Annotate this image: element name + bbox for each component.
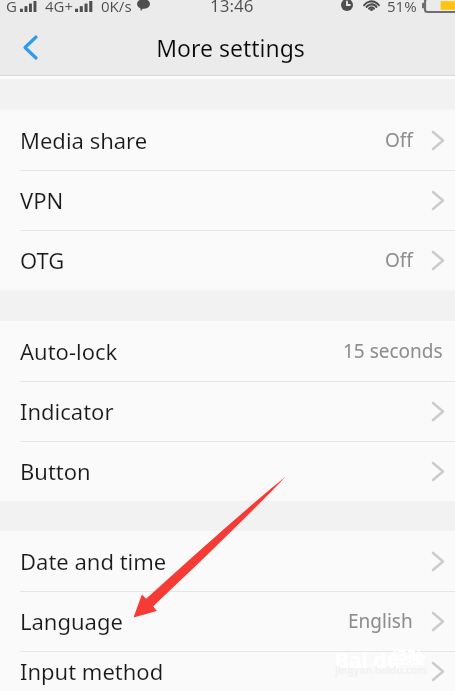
button[interactable]: Indicator (0, 381, 455, 441)
button[interactable]: VPN (0, 170, 455, 230)
staticText: jingyan.baidu.com (335, 663, 427, 677)
staticText: Off (385, 247, 413, 273)
button[interactable]: Button (0, 441, 455, 501)
button[interactable]: Date and time (0, 531, 455, 591)
staticText: Button (20, 456, 91, 486)
staticText: G (6, 0, 17, 16)
staticText: Bai du (335, 646, 401, 675)
button[interactable]: OTG (0, 230, 455, 290)
staticText: Language (20, 606, 123, 636)
staticText: 15 seconds (343, 338, 443, 364)
staticText: Indicator (20, 396, 114, 426)
staticText: Auto-lock (20, 336, 118, 366)
staticText: More settings (156, 32, 305, 63)
button[interactable]: Back (0, 24, 56, 76)
staticText: Media share (20, 125, 148, 155)
button[interactable]: Media share (0, 110, 455, 170)
staticText: Off (385, 127, 413, 153)
staticText: 13:46 (210, 0, 254, 17)
button[interactable]: Language (0, 591, 455, 651)
staticText: VPN (20, 185, 64, 215)
button[interactable]: Auto-lock (0, 321, 455, 381)
button[interactable]: Input method (0, 651, 455, 691)
staticText: 0K/s (101, 0, 132, 16)
staticText: Input method (20, 656, 164, 686)
staticText: 4G+ (45, 0, 74, 16)
staticText: 51% (387, 0, 417, 16)
staticText: 经验 (391, 648, 425, 669)
staticText: OTG (20, 245, 65, 275)
staticText: English (348, 608, 413, 634)
staticText: Date and time (20, 546, 167, 576)
